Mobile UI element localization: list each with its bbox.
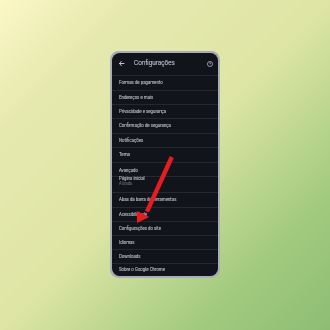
button[interactable]: Página inicial <box>112 176 218 192</box>
button[interactable]: Downloads <box>112 249 218 263</box>
staticText: Idiomas <box>119 239 135 245</box>
staticText: Configurações <box>134 58 175 67</box>
button[interactable]: Back <box>118 60 124 66</box>
staticText: Confirmação de segurança <box>119 122 171 128</box>
button[interactable]: Privacidade e segurança <box>112 104 218 118</box>
staticText: Sobre o Google Chrome <box>119 266 165 272</box>
button[interactable]: Avançado <box>112 162 218 177</box>
staticText: Ativada <box>119 181 132 186</box>
staticText: Avançado <box>119 167 138 173</box>
staticText: Privacidade e segurança <box>119 108 167 114</box>
button[interactable]: Confirmação de segurança <box>112 118 218 132</box>
staticText: Formas de pagamento <box>119 79 163 85</box>
button[interactable]: Notificações <box>112 133 218 147</box>
staticText: Abas da barra de ferramentas <box>119 196 177 202</box>
staticText: Acessibilidade <box>119 211 147 217</box>
button[interactable]: Abas da barra de ferramentas <box>112 192 218 206</box>
button[interactable]: Acessibilidade <box>112 207 218 221</box>
staticText: Downloads <box>119 253 141 259</box>
button[interactable]: Sobre o Google Chrome <box>112 263 218 274</box>
staticText: Notificações <box>119 137 144 143</box>
staticText: Página inicial <box>119 175 145 181</box>
staticText: Configurações do site <box>119 225 162 231</box>
button[interactable]: Configurações do site <box>112 221 218 235</box>
button[interactable]: Endereços e mais <box>112 90 218 104</box>
button[interactable]: Idiomas <box>112 235 218 249</box>
button[interactable]: Help <box>206 60 214 68</box>
button[interactable]: Formas de pagamento <box>112 75 218 89</box>
staticText: Endereços e mais <box>119 94 154 100</box>
button[interactable]: Tema <box>112 147 218 161</box>
staticText: Tema <box>119 151 130 157</box>
